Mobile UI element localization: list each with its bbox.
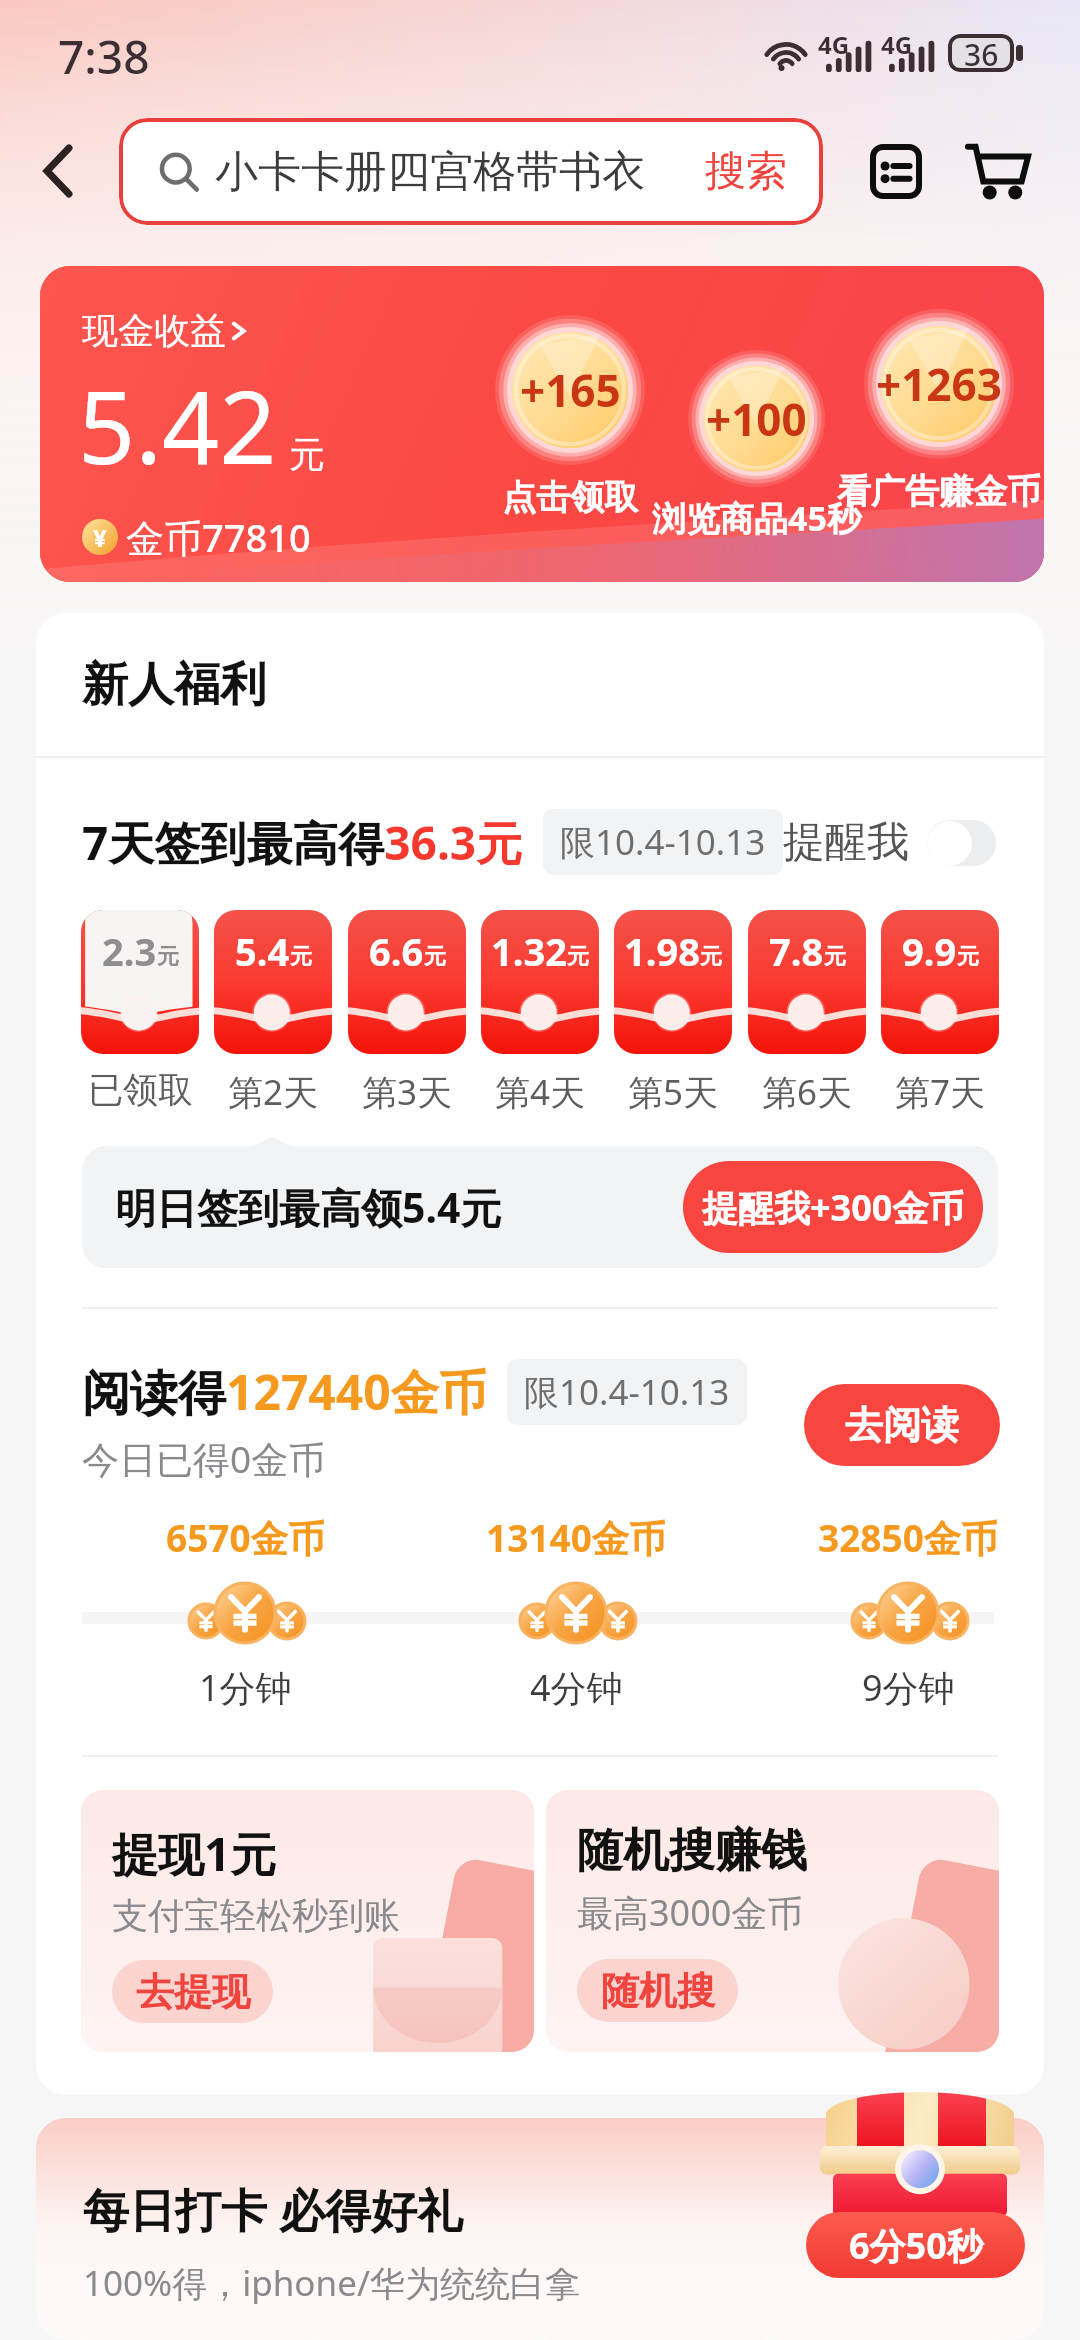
staticText: 限10.4-10.13 [524,1368,730,1416]
button[interactable]: +165 [495,315,645,465]
staticText: 第7天 [895,1068,986,1116]
button[interactable]: 9.9 [881,910,999,1054]
staticText: 13140金币 [486,1512,666,1563]
staticText: 1.98 [624,925,700,977]
button[interactable]: 现金收益 [40,266,1044,582]
staticText: 5.42 [78,357,277,493]
button[interactable]: 6.6 [348,910,466,1054]
staticText: 现金收益 [82,308,226,353]
staticText: +100 [706,389,807,449]
staticText: 4分钟 [530,1663,623,1712]
staticText: 1.32 [491,925,567,977]
staticText: 提醒我 [783,816,909,869]
staticText: 点击领取 [502,476,638,519]
staticText: 元 [289,432,325,477]
button[interactable]: 随机搜赚钱 [546,1790,999,2052]
button[interactable]: Cart [952,116,1044,226]
staticText: 元 [157,943,179,971]
button[interactable]: 随机搜 [577,1959,738,2022]
staticText: 搜索 [705,146,787,198]
staticText: 每日打卡 必得好礼 [83,2178,463,2241]
staticText: 9分钟 [862,1663,955,1712]
staticText: 7:38 [58,25,150,88]
staticText: ¥ [93,521,107,554]
button[interactable]: 7.8 [748,910,866,1054]
staticText: 6分50秒 [849,2221,983,2270]
staticText: 提现1元 [112,1822,277,1885]
staticText: 小卡卡册四宫格带书衣 [215,145,645,199]
staticText: 阅读得127440金币 [82,1359,487,1425]
staticText: 限10.4-10.13 [560,818,766,866]
staticText: 看广告赚金币 [837,470,1041,513]
button[interactable]: 提醒我 [783,816,996,869]
staticText: 7天签到最高得36.3元 [82,811,523,874]
button[interactable]: 1.98 [614,910,732,1054]
button[interactable]: 每日打卡 必得好礼 [36,2118,1044,2340]
staticText: 去阅读 [845,1401,959,1449]
staticText: 随机搜 [601,1967,715,2015]
staticText: 金币77810 [126,511,311,563]
staticText: 随机搜赚钱 [577,1822,807,1880]
button[interactable]: 提现1元 [81,1790,534,2052]
staticText: +165 [520,360,621,420]
staticText: 32850金币 [818,1512,998,1563]
button[interactable]: 去阅读 [804,1384,1000,1466]
staticText: 元 [700,943,722,971]
button[interactable]: 提醒我+300金币 [683,1161,983,1253]
button[interactable]: Back [0,112,119,230]
button[interactable]: 5.4 [214,910,332,1054]
staticText: 1分钟 [199,1663,292,1712]
staticText: 已领取 [88,1068,193,1112]
staticText: 今日已得0金币 [82,1433,326,1484]
staticText: 第4天 [495,1068,586,1116]
staticText: 2.3 [102,925,157,977]
staticText: 第5天 [628,1068,719,1116]
button[interactable]: 去提现 [112,1960,273,2023]
staticText: 36 [964,34,999,72]
staticText: 元 [290,943,312,971]
button[interactable]: 1.32 [481,910,599,1054]
button[interactable]: Orders [852,116,940,226]
staticText: 9.9 [902,925,957,977]
staticText: 新人福利 [82,656,266,714]
button[interactable]: +100 [688,350,825,487]
button[interactable]: 2.3 [81,910,199,1054]
button[interactable]: 小卡卡册四宫格带书衣 [119,118,823,225]
staticText: 第2天 [228,1068,319,1116]
staticText: 4G [818,28,850,61]
staticText: 7.8 [769,925,824,977]
staticText: 支付宝轻松秒到账 [112,1893,400,1938]
staticText: 明日签到最高领5.4元 [115,1179,502,1235]
staticText: 元 [424,943,446,971]
staticText: +1263 [876,354,1002,414]
staticText: 第3天 [362,1068,453,1116]
staticText: 5.4 [235,925,290,977]
staticText: 第6天 [762,1068,853,1116]
staticText: 4G [881,28,913,61]
staticText: 浏览商品45秒 [652,495,861,541]
staticText: 去提现 [136,1968,250,2016]
staticText: 最高3000金币 [577,1888,804,1937]
staticText: 6570金币 [166,1512,325,1563]
staticText: 提醒我+300金币 [702,1183,965,1232]
staticText: 元 [567,943,589,971]
staticText: 6.6 [369,925,424,977]
button[interactable]: 6分50秒 [806,2212,1025,2278]
staticText: 100%得，iphone/华为统统白拿 [83,2259,580,2307]
button[interactable]: +1263 [864,309,1014,459]
staticText: 元 [824,943,846,971]
staticText: 元 [957,943,979,971]
